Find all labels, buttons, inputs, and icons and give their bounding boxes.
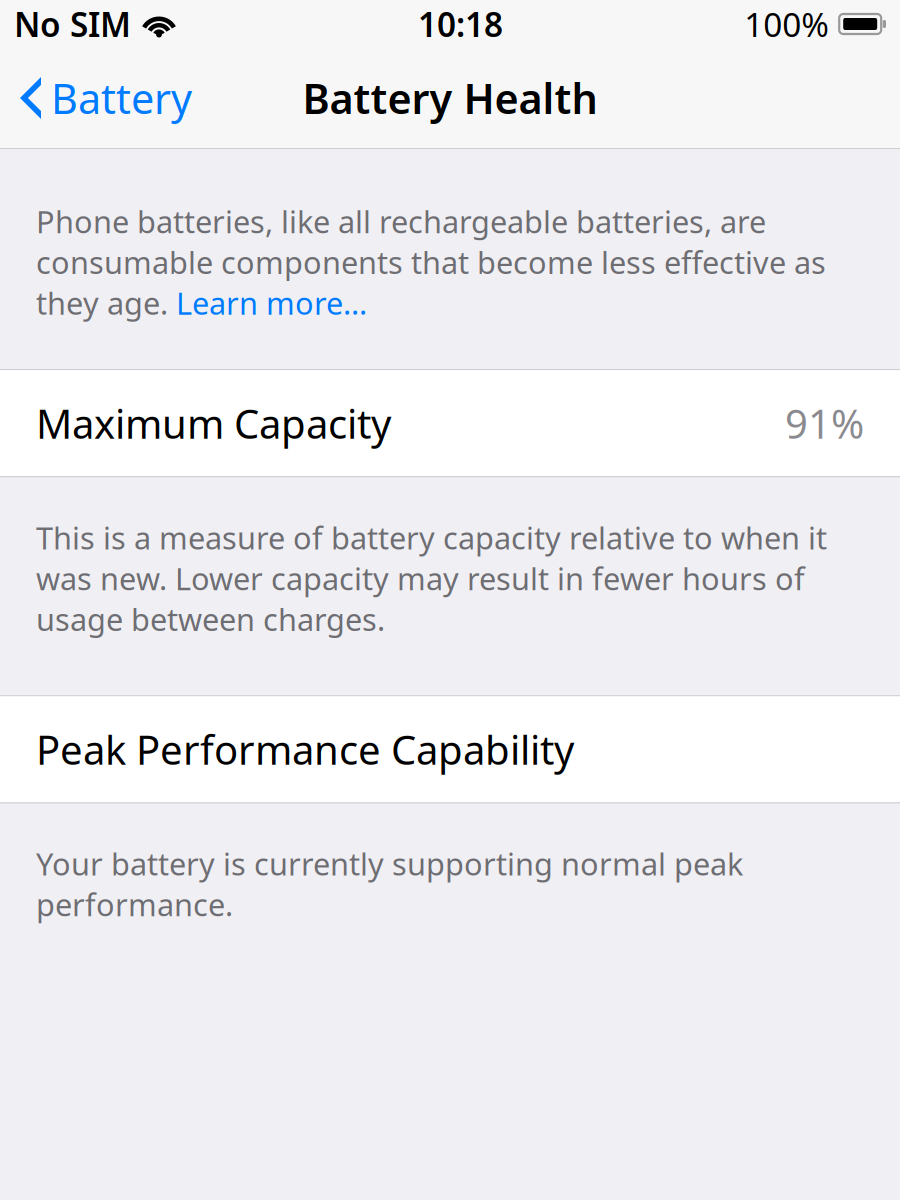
staticText: Battery <box>51 71 192 125</box>
button[interactable]: Peak Performance Capability <box>0 696 900 802</box>
staticText: Maximum Capacity <box>36 397 391 450</box>
staticText: Your battery is currently supporting nor… <box>36 843 743 925</box>
staticText: 10:18 <box>418 2 503 46</box>
staticText: 91% <box>785 397 864 450</box>
staticText: Phone batteries, like all rechargeable b… <box>36 201 826 282</box>
button[interactable]: Learn more... <box>176 282 367 323</box>
staticText: Battery Health <box>302 71 597 125</box>
staticText: 100% <box>744 2 829 46</box>
staticText: Peak Performance Capability <box>36 723 574 776</box>
staticText: they age. <box>36 282 176 323</box>
button[interactable]: Battery <box>0 48 206 148</box>
staticText: No SIM <box>14 2 131 46</box>
button[interactable]: Maximum Capacity <box>0 370 900 476</box>
staticText: This is a measure of battery capacity re… <box>36 517 827 639</box>
staticText: Learn more... <box>176 282 367 323</box>
